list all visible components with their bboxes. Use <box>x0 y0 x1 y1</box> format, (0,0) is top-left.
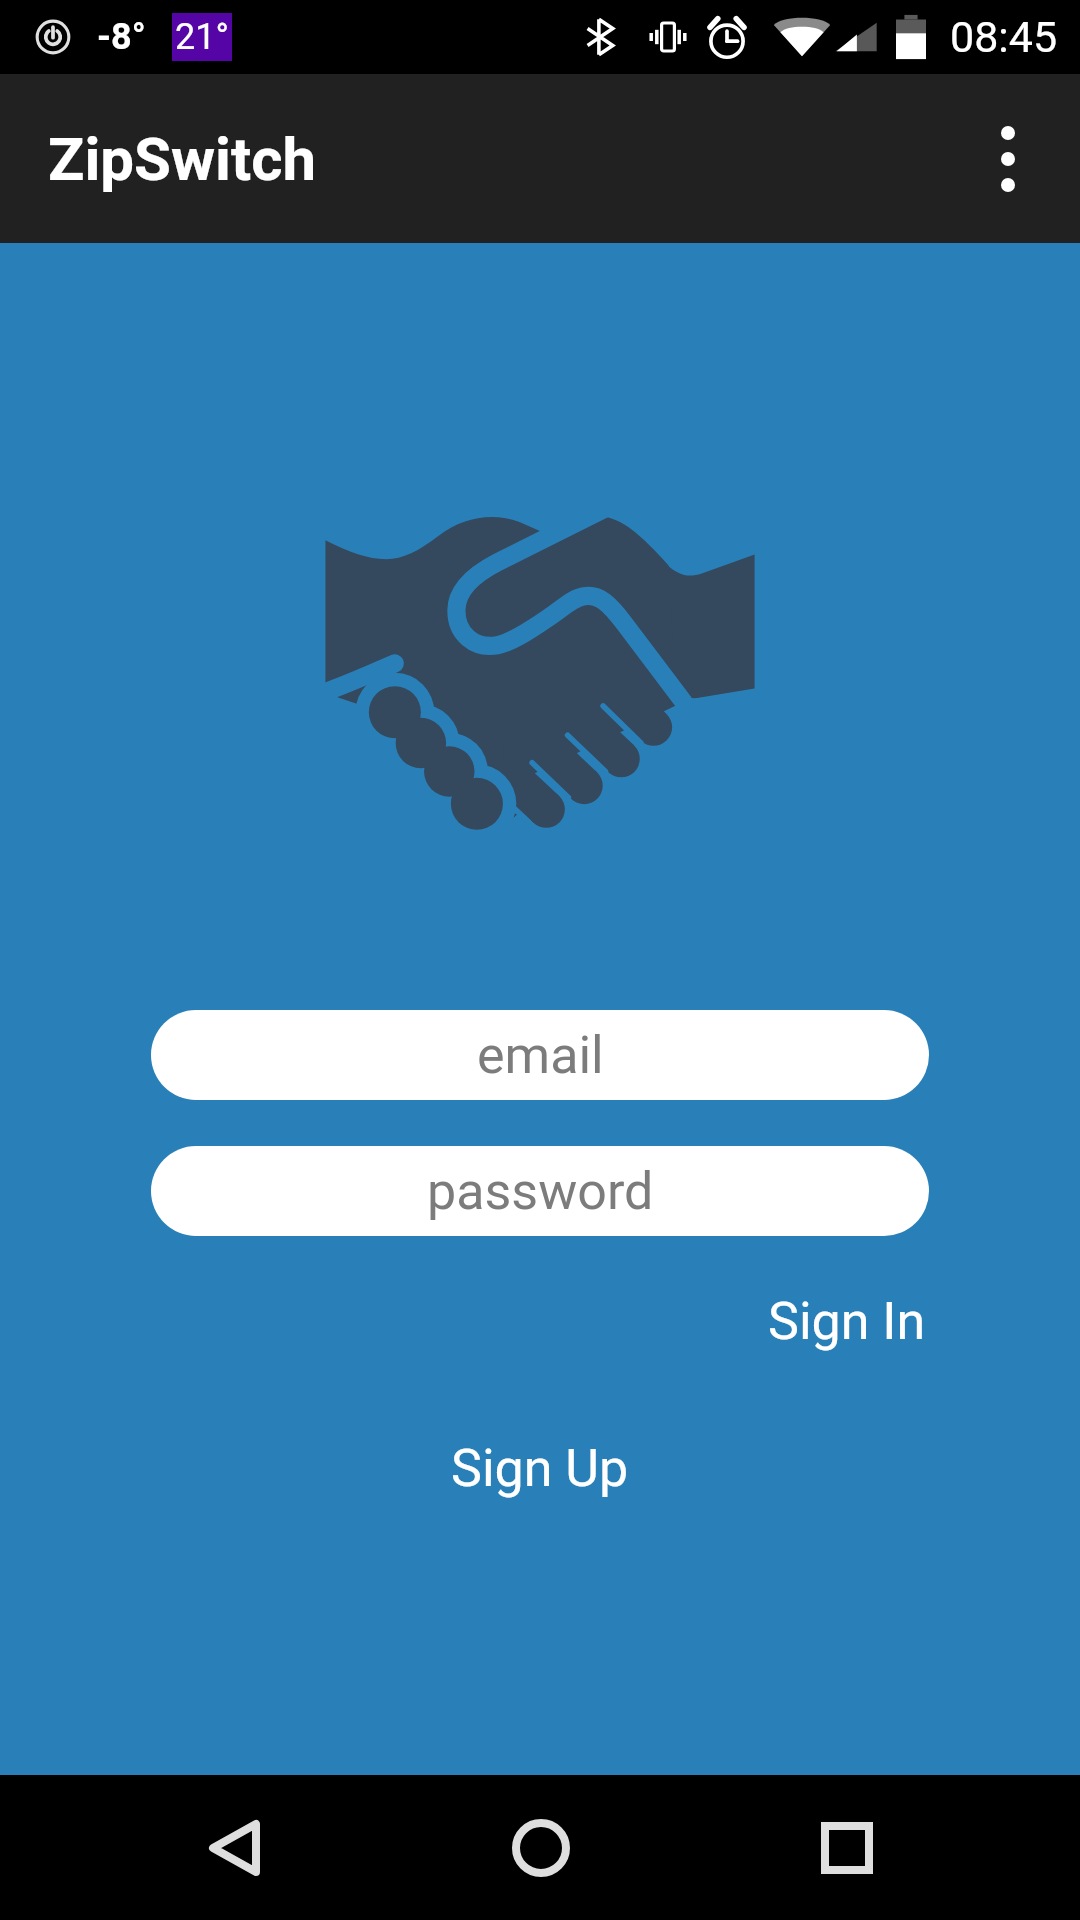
button[interactable]: More options <box>936 87 1080 231</box>
staticText: ZipSwitch <box>48 124 317 194</box>
button[interactable]: password <box>151 1146 929 1236</box>
button[interactable]: Sign Up <box>401 1420 679 1517</box>
button[interactable]: Recents <box>774 1775 919 1920</box>
staticText: Sign In <box>768 1291 926 1352</box>
staticText: -8° <box>97 16 146 58</box>
button[interactable]: email <box>151 1010 929 1100</box>
button[interactable]: Home <box>468 1775 613 1920</box>
staticText: Sign Up <box>451 1438 629 1499</box>
button[interactable]: Sign In <box>718 1273 1080 1370</box>
staticText: 08:45 <box>950 12 1058 62</box>
staticText: email <box>477 1025 604 1086</box>
button[interactable]: Back <box>161 1775 306 1920</box>
staticText: password <box>427 1161 654 1222</box>
staticText: 21° <box>175 16 229 58</box>
